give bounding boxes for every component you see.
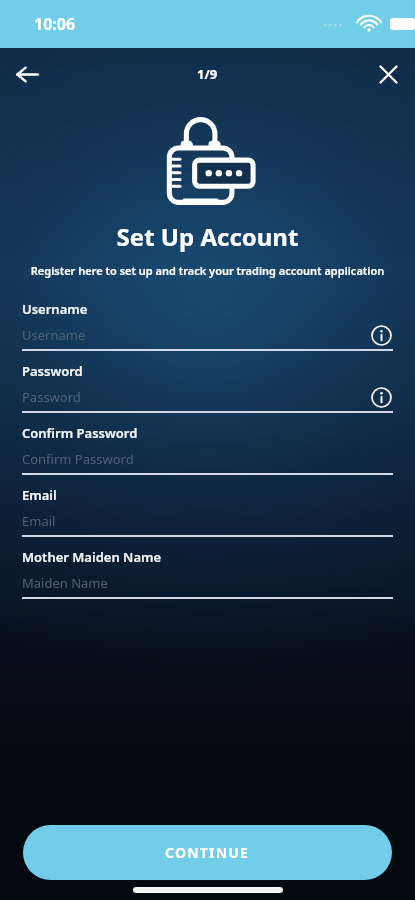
button[interactable]: Information about Username xyxy=(369,324,393,346)
staticText: Set Up Account xyxy=(0,220,415,253)
staticText: Password xyxy=(22,362,83,380)
button[interactable]: Username xyxy=(22,300,393,362)
button[interactable]: CONTINUE xyxy=(23,825,392,880)
staticText: Password xyxy=(22,388,369,406)
staticText: Confirm Password xyxy=(22,424,138,442)
staticText: 10:06 xyxy=(34,13,76,35)
staticText: Email xyxy=(22,512,393,530)
staticText: Register here to set up and track your t… xyxy=(12,263,403,278)
button[interactable]: Close xyxy=(371,57,405,91)
staticText: Username xyxy=(22,300,88,318)
button[interactable]: Confirm Password xyxy=(22,424,393,486)
button[interactable]: Email xyxy=(22,486,393,548)
staticText: Email xyxy=(22,486,57,504)
button[interactable]: Information about Password xyxy=(369,386,393,408)
button[interactable]: Password xyxy=(22,362,393,424)
staticText: Username xyxy=(22,326,369,344)
staticText: Maiden Name xyxy=(22,574,393,592)
staticText: CONTINUE xyxy=(165,843,250,862)
staticText: Confirm Password xyxy=(22,450,393,468)
staticText: 1/9 xyxy=(197,65,218,83)
button[interactable]: Mother Maiden Name xyxy=(22,548,393,610)
staticText: Mother Maiden Name xyxy=(22,548,162,566)
button[interactable]: Back xyxy=(10,57,44,91)
